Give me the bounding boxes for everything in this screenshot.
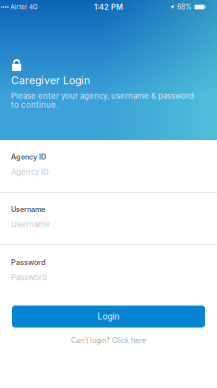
staticText: 68% <box>177 3 192 11</box>
staticText: Login <box>97 311 119 322</box>
staticText: Agency ID <box>11 167 49 177</box>
staticText: 1:42 PM <box>94 2 123 11</box>
staticText: Password <box>11 258 45 267</box>
staticText: Username <box>11 220 50 229</box>
staticText: Caregiver Login <box>11 74 90 87</box>
staticText: 4G <box>29 3 38 11</box>
staticText: to continue. <box>11 100 58 110</box>
staticText: Airtel <box>10 3 27 11</box>
staticText: Can't login? Click here <box>71 336 146 345</box>
staticText: Username <box>11 205 45 214</box>
staticText: Agency ID <box>11 153 46 161</box>
staticText: Please enter your agency, username & pas… <box>11 91 194 101</box>
button[interactable]: Login <box>12 305 205 327</box>
button[interactable]: Can't login? Click here <box>0 335 217 345</box>
staticText: Password <box>11 273 47 282</box>
